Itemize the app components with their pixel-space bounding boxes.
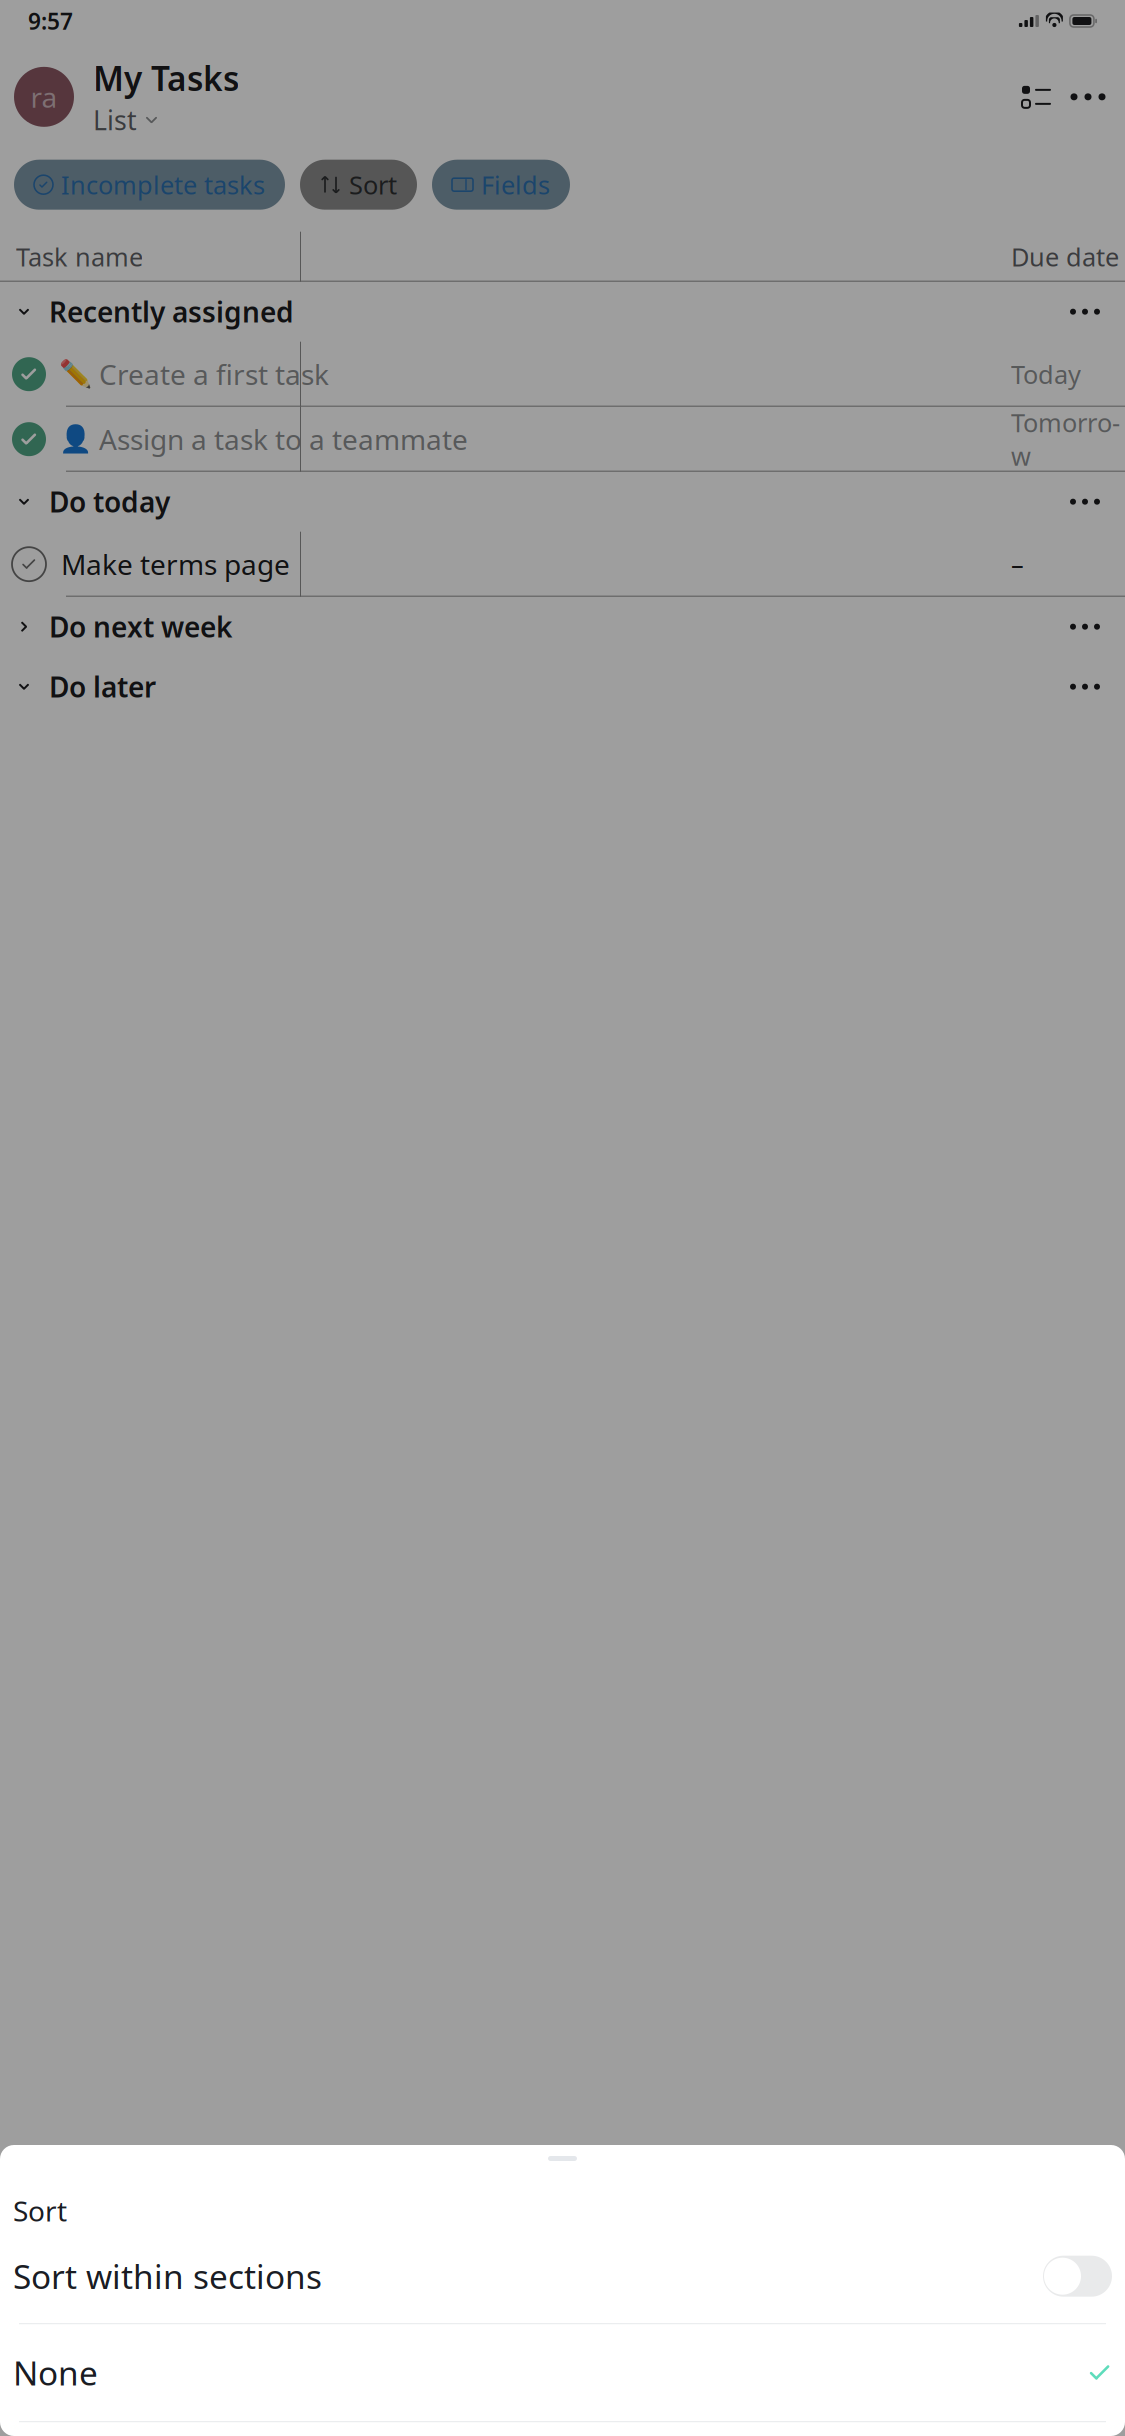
staticText: 👤 [59, 424, 92, 454]
staticText: Sort [13, 2192, 67, 2229]
staticText: None [13, 2351, 98, 2395]
staticText: List [93, 102, 137, 138]
staticText: Do next week [49, 608, 232, 645]
button[interactable]: Due date [0, 2422, 1125, 2436]
staticText: Recently assigned [49, 293, 294, 330]
staticText: Due date [1011, 240, 1119, 273]
staticText: – [1011, 547, 1024, 581]
staticText: Assign a task to a teammate [99, 421, 468, 458]
staticText: Make terms page [61, 546, 290, 583]
staticText: Fields [481, 168, 550, 201]
staticText: Today [1011, 357, 1081, 391]
button[interactable]: Sort [300, 160, 417, 210]
button[interactable]: Change view [1022, 86, 1051, 108]
staticText: Task name [16, 240, 143, 273]
staticText: My Tasks [93, 56, 239, 100]
button[interactable]: Sort within sections [0, 2229, 1125, 2323]
button[interactable]: None [0, 2324, 1125, 2421]
staticText: Do later [49, 668, 156, 705]
staticText: Do today [49, 483, 170, 520]
staticText: Create a first task [99, 356, 329, 393]
staticText: Sort within sections [13, 2254, 322, 2298]
button[interactable]: More options [1065, 77, 1111, 117]
button[interactable]: Fields [432, 160, 570, 210]
staticText: ra [30, 78, 57, 115]
staticText: 9:57 [28, 6, 73, 36]
staticText: Tomorrow [1011, 405, 1120, 473]
staticText: ✏️ [59, 359, 92, 389]
staticText: Sort [349, 168, 397, 201]
staticText: Incomplete tasks [61, 168, 265, 201]
button[interactable]: Incomplete tasks [14, 160, 285, 210]
